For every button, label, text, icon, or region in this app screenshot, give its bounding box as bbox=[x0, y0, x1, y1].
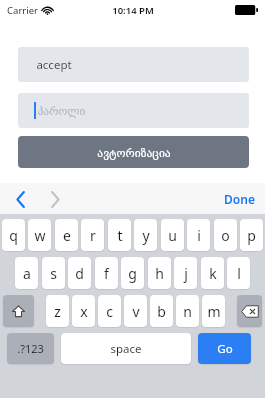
button[interactable]: e bbox=[55, 219, 78, 251]
staticText: d bbox=[75, 264, 84, 283]
staticText: n bbox=[183, 302, 192, 321]
staticText: x bbox=[80, 302, 88, 321]
staticText: accept bbox=[36, 57, 72, 73]
button[interactable]: n bbox=[176, 295, 199, 327]
staticText: ავტორიზაცია bbox=[97, 146, 171, 159]
button[interactable]: .?123 bbox=[7, 333, 54, 364]
button[interactable]: space bbox=[61, 333, 191, 364]
button[interactable]: ავტორიზაცია bbox=[18, 136, 249, 168]
staticText: პაროლი bbox=[37, 104, 86, 117]
staticText: c bbox=[106, 302, 113, 321]
button[interactable]: z bbox=[46, 295, 69, 327]
staticText: Carrier bbox=[7, 4, 38, 17]
staticText: q bbox=[9, 226, 18, 245]
button[interactable]: y bbox=[134, 219, 157, 251]
button[interactable]: Next field bbox=[41, 185, 69, 213]
button[interactable]: u bbox=[161, 219, 184, 251]
staticText: Go bbox=[217, 341, 233, 357]
staticText: z bbox=[54, 302, 61, 321]
button[interactable]: k bbox=[201, 257, 224, 289]
staticText: p bbox=[247, 226, 256, 245]
staticText: g bbox=[128, 264, 137, 283]
staticText: u bbox=[168, 226, 177, 245]
staticText: w bbox=[34, 226, 46, 245]
button[interactable]: Go bbox=[198, 333, 251, 364]
button[interactable]: p bbox=[240, 219, 263, 251]
button[interactable]: q bbox=[2, 219, 25, 251]
button[interactable]: w bbox=[28, 219, 51, 251]
button[interactable]: accept bbox=[18, 47, 249, 82]
button[interactable]: v bbox=[124, 295, 147, 327]
staticText: l bbox=[237, 264, 241, 283]
staticText: 10:14 PM bbox=[112, 4, 154, 17]
button[interactable]: Previous field bbox=[7, 185, 35, 213]
button[interactable]: s bbox=[42, 257, 65, 289]
staticText: f bbox=[104, 264, 109, 283]
staticText: k bbox=[209, 264, 217, 283]
button[interactable]: g bbox=[121, 257, 144, 289]
button[interactable]: პაროლი bbox=[18, 93, 249, 128]
button[interactable]: l bbox=[227, 257, 250, 289]
button[interactable]: Shift bbox=[3, 295, 34, 327]
staticText: space bbox=[110, 341, 142, 357]
button[interactable]: Backspace bbox=[237, 295, 262, 327]
button[interactable]: b bbox=[150, 295, 173, 327]
button[interactable]: Done bbox=[220, 186, 259, 212]
button[interactable]: i bbox=[187, 219, 210, 251]
button[interactable]: c bbox=[98, 295, 121, 327]
staticText: h bbox=[155, 264, 164, 283]
button[interactable]: x bbox=[72, 295, 95, 327]
staticText: v bbox=[132, 302, 140, 321]
staticText: m bbox=[207, 302, 221, 321]
staticText: e bbox=[63, 226, 71, 245]
button[interactable]: o bbox=[214, 219, 237, 251]
button[interactable]: d bbox=[68, 257, 91, 289]
button[interactable]: j bbox=[174, 257, 197, 289]
staticText: .?123 bbox=[17, 341, 44, 356]
staticText: Done bbox=[224, 191, 255, 207]
staticText: y bbox=[142, 226, 150, 245]
staticText: j bbox=[184, 264, 188, 283]
staticText: o bbox=[221, 226, 230, 245]
staticText: r bbox=[90, 226, 96, 245]
staticText: t bbox=[117, 226, 123, 245]
button[interactable]: m bbox=[202, 295, 225, 327]
staticText: b bbox=[157, 302, 166, 321]
staticText: i bbox=[197, 226, 201, 245]
staticText: s bbox=[50, 264, 57, 283]
button[interactable]: f bbox=[95, 257, 118, 289]
staticText: a bbox=[23, 264, 31, 283]
button[interactable]: h bbox=[148, 257, 171, 289]
button[interactable]: r bbox=[81, 219, 104, 251]
button[interactable]: a bbox=[15, 257, 38, 289]
button[interactable]: t bbox=[108, 219, 131, 251]
